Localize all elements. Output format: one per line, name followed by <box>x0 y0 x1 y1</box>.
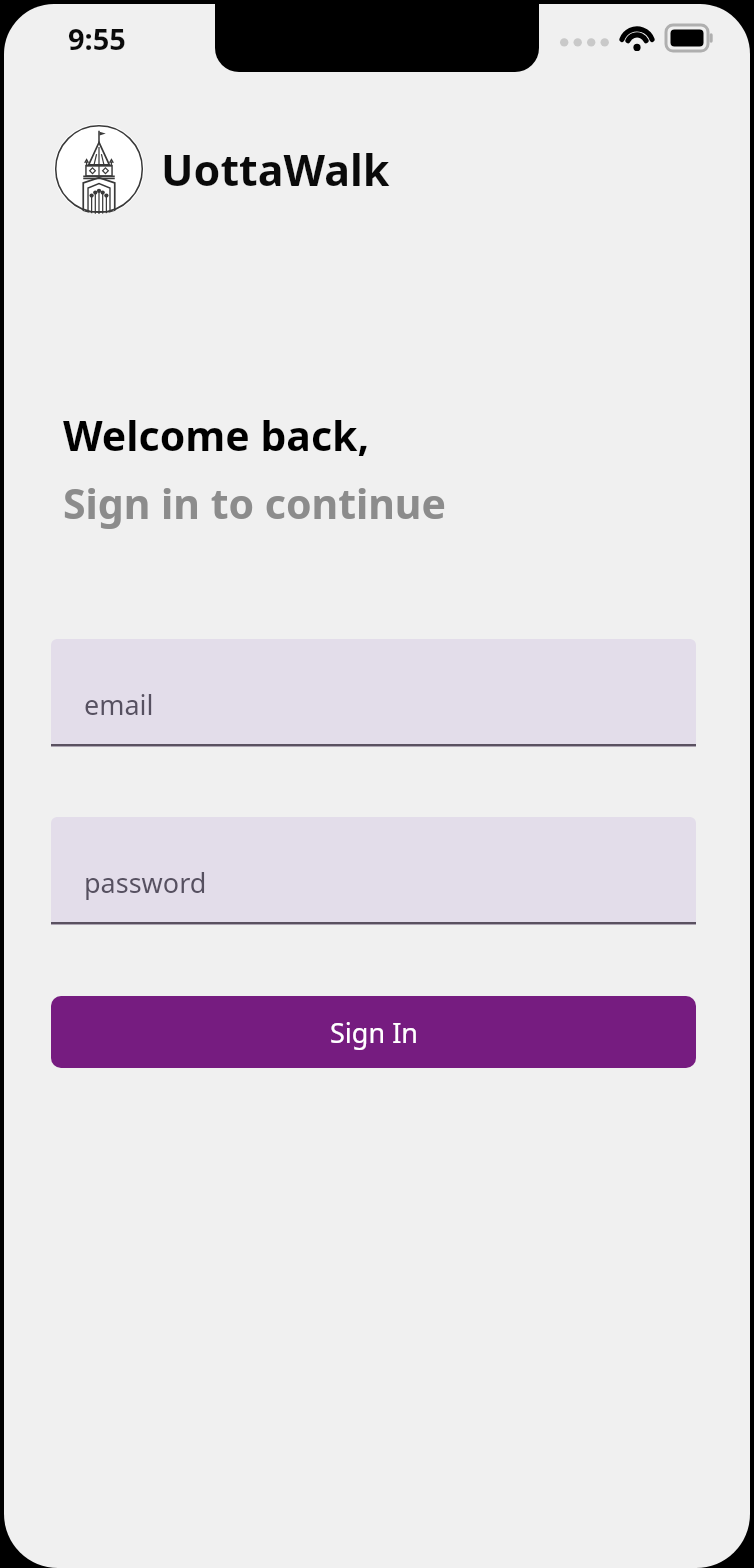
staticText: Sign in to continue <box>63 475 446 531</box>
staticText: email <box>84 686 154 723</box>
staticText: 9:55 <box>68 19 126 58</box>
staticText: UottaWalk <box>161 140 390 199</box>
button[interactable]: Sign In <box>51 996 696 1068</box>
button[interactable]: password <box>51 817 696 925</box>
staticText: Sign In <box>330 1014 418 1051</box>
staticText: Welcome back, <box>63 407 370 463</box>
button[interactable]: email <box>51 639 696 747</box>
staticText: password <box>84 864 207 901</box>
